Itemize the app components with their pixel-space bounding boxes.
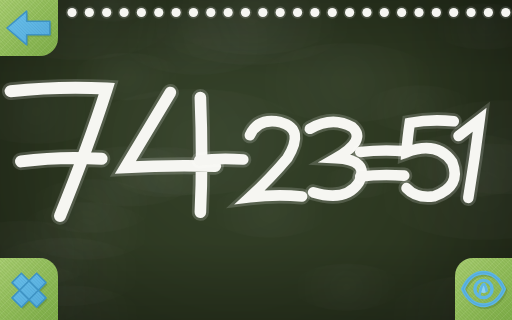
button[interactable]: Close <box>0 258 58 320</box>
button[interactable]: Back <box>0 0 58 56</box>
button[interactable]: Show hint <box>455 258 512 320</box>
